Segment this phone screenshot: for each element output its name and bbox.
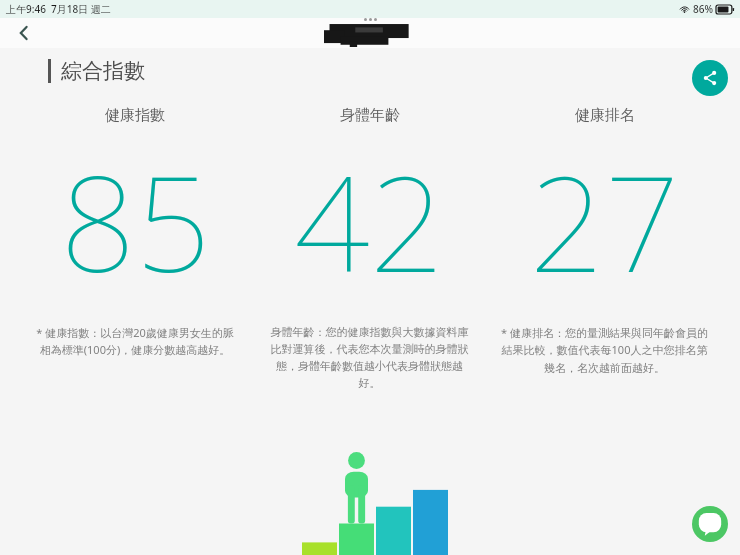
staticText: 健康指數	[105, 106, 165, 125]
staticText: 身體年齡	[340, 106, 400, 125]
staticText: 27	[529, 131, 680, 311]
button[interactable]: Share to LINE	[692, 506, 728, 542]
button[interactable]: Share	[692, 60, 728, 96]
staticText: 身體年齡：您的健康指數與大數據資料庫比對運算後，代表您本次量測時的身體狀態，身體…	[266, 325, 473, 390]
staticText: 健康排名	[575, 106, 635, 125]
staticText: 42	[294, 131, 445, 311]
staticText: * 健康指數：以台灣20歲健康男女生的脈相為標準(100分)，健康分數越高越好。	[32, 325, 238, 358]
staticText: 86%	[693, 2, 713, 16]
staticText: * 健康排名：您的量測結果與同年齡會員的結果比較，數值代表每100人之中您排名第…	[501, 325, 708, 375]
staticText: 上午9:46 7月18日 週二	[6, 2, 111, 16]
staticText: 綜合指數	[61, 58, 145, 84]
staticText: 85	[60, 131, 211, 311]
button[interactable]: Back	[8, 18, 40, 48]
